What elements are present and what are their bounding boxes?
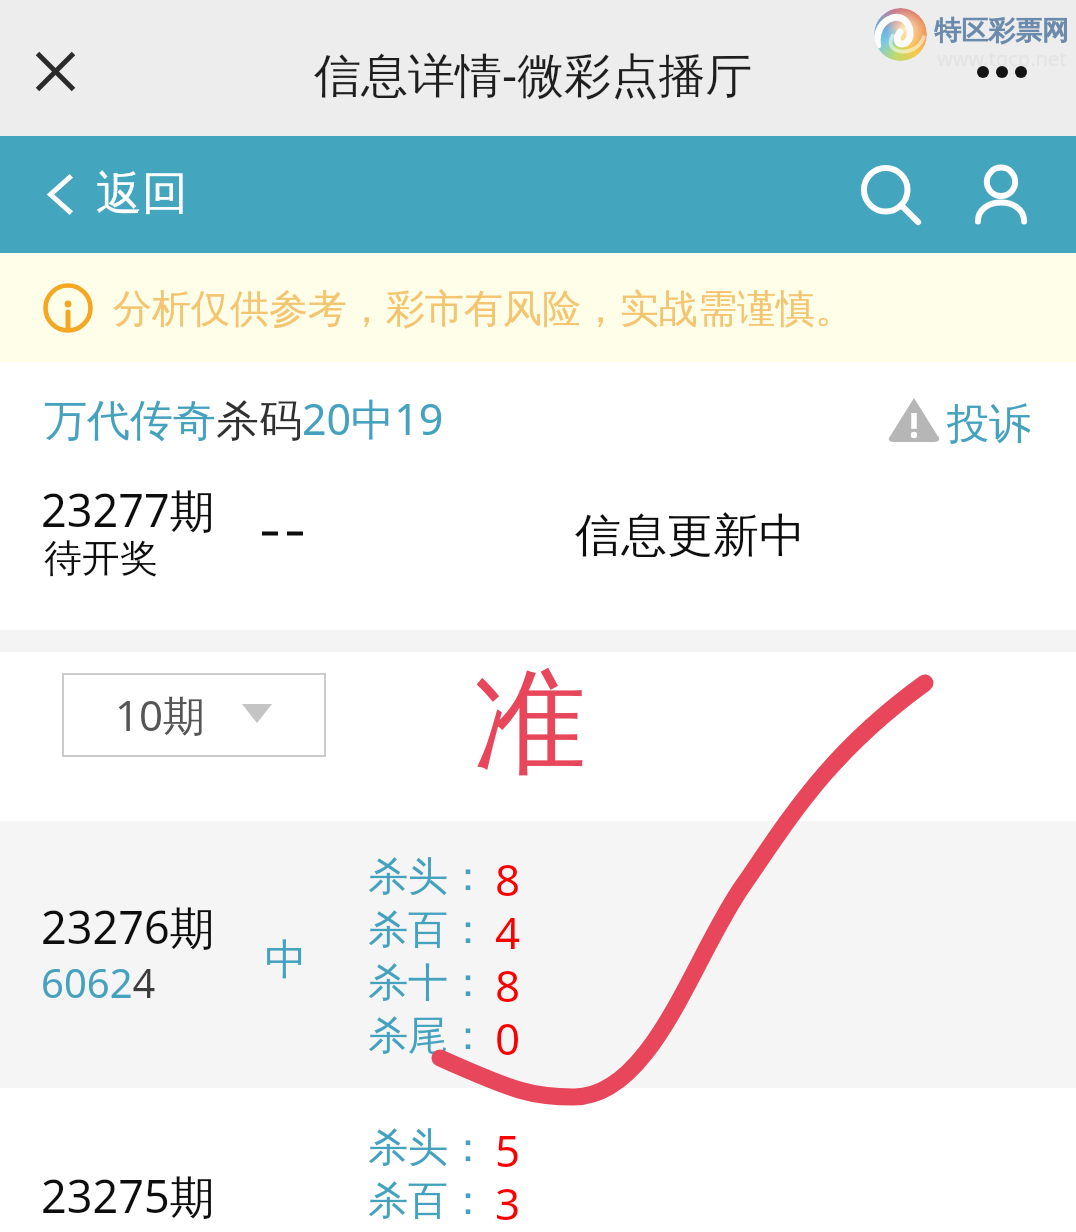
staticText: 4 bbox=[495, 902, 521, 955]
staticText: 10期 bbox=[115, 686, 206, 743]
button[interactable]: Account bbox=[968, 162, 1034, 228]
button[interactable]: 返回 bbox=[36, 136, 206, 253]
staticText: 杀头： bbox=[368, 1122, 488, 1172]
button[interactable]: Close bbox=[18, 34, 92, 108]
button[interactable]: Search bbox=[858, 162, 924, 228]
staticText: 23275期 bbox=[41, 1165, 215, 1226]
staticText: 杀尾： bbox=[368, 1010, 488, 1060]
staticText: 23276期 bbox=[41, 896, 215, 957]
staticText: 23277期 bbox=[41, 479, 215, 540]
staticText: 特区彩票网 bbox=[934, 14, 1069, 48]
staticText: 分析仅供参考，彩市有风险，实战需谨慎。 bbox=[113, 284, 854, 333]
staticText: 返回 bbox=[96, 165, 188, 223]
staticText: 准 bbox=[473, 652, 587, 796]
staticText: 5 bbox=[495, 1120, 521, 1173]
button[interactable]: Information bbox=[40, 280, 96, 336]
staticText: www.tqcp.net bbox=[937, 45, 1067, 72]
staticText: 杀头： bbox=[368, 851, 488, 901]
staticText: 0 bbox=[495, 1008, 521, 1061]
staticText: 投诉 bbox=[947, 398, 1031, 451]
staticText: 杀百： bbox=[368, 1175, 488, 1225]
staticText: 3 bbox=[495, 1173, 521, 1226]
staticText: 万代传奇杀码20中19 bbox=[44, 389, 444, 448]
button[interactable]: 23276期 bbox=[0, 821, 1076, 1088]
button[interactable]: 投诉 bbox=[880, 386, 1040, 450]
button[interactable]: More options bbox=[962, 51, 1042, 93]
staticText: 8 bbox=[495, 955, 521, 1008]
staticText: 中 bbox=[265, 934, 307, 987]
button[interactable]: 23275期 bbox=[0, 1088, 1076, 1232]
staticText: 信息详情-微彩点播厅 bbox=[314, 42, 753, 106]
staticText: 待开奖 bbox=[44, 534, 158, 582]
staticText: 杀百： bbox=[368, 904, 488, 954]
staticText: 杀十： bbox=[368, 957, 488, 1007]
staticText: 信息更新中 bbox=[575, 507, 805, 565]
staticText: 8 bbox=[495, 849, 521, 902]
button[interactable]: 10期 bbox=[62, 673, 326, 757]
staticText: 60624 bbox=[41, 955, 156, 1009]
